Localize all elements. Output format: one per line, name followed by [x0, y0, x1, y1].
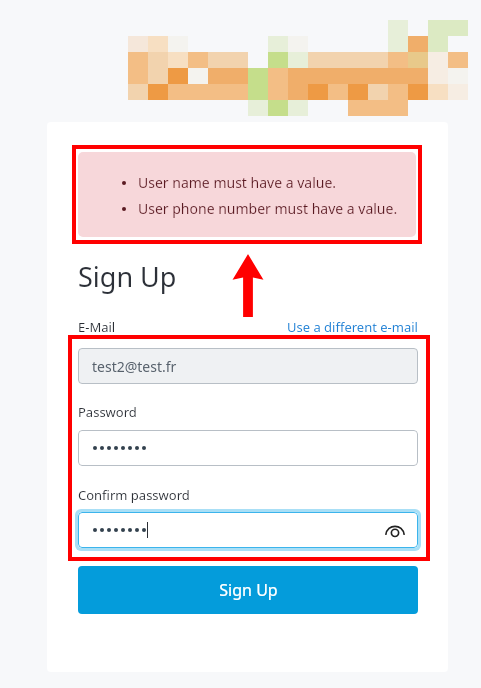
staticText: Use a different e-mail: [287, 318, 418, 336]
staticText: test2@test.fr: [92, 357, 177, 376]
staticText: User phone number must have a value.: [138, 199, 398, 218]
button[interactable]: Show password: [78, 512, 418, 548]
button[interactable]: Use a different e-mail: [286, 316, 419, 338]
button[interactable]: Show password: [384, 519, 406, 541]
button[interactable]: test2@test.fr: [78, 348, 418, 384]
button[interactable]: Sign Up: [78, 566, 418, 614]
staticText: Confirm password: [78, 486, 190, 504]
staticText: User name must have a value.: [138, 173, 337, 192]
staticText: Sign Up: [78, 258, 177, 295]
staticText: Password: [78, 403, 137, 421]
button[interactable]: [78, 430, 418, 466]
staticText: E-Mail: [78, 318, 116, 336]
staticText: Sign Up: [219, 579, 278, 601]
